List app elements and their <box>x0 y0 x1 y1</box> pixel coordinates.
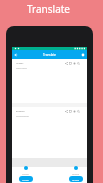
staticText: Translation <box>16 114 30 117</box>
button[interactable]: Arabic <box>12 59 87 73</box>
staticText: Speak <box>72 178 80 181</box>
staticText: Speak <box>72 172 80 175</box>
button[interactable]: Action 1 <box>68 61 72 65</box>
button[interactable]: English <box>12 107 87 121</box>
button[interactable]: Action 0 <box>64 61 68 65</box>
button[interactable]: Listen <box>24 166 28 170</box>
button[interactable]: Action 2 <box>72 109 76 113</box>
button[interactable]: Speak <box>69 176 83 182</box>
staticText: Arabic <box>16 61 24 64</box>
button[interactable]: Speak <box>74 166 78 170</box>
staticText: Translate <box>27 2 71 16</box>
staticText: English <box>16 109 25 112</box>
button[interactable]: Action 3 <box>76 61 80 65</box>
staticText: Type text <box>16 66 27 69</box>
staticText: Translate <box>43 53 56 57</box>
button[interactable]: Action 3 <box>76 109 80 113</box>
button[interactable]: Action 2 <box>72 61 76 65</box>
staticText: Listen <box>22 172 30 175</box>
button[interactable]: Listen <box>19 176 33 182</box>
button[interactable]: More options <box>80 52 86 58</box>
button[interactable]: Action 1 <box>68 109 72 113</box>
button[interactable]: Action 0 <box>64 109 68 113</box>
button[interactable]: Navigate up <box>13 52 19 58</box>
staticText: Listen <box>22 178 30 181</box>
